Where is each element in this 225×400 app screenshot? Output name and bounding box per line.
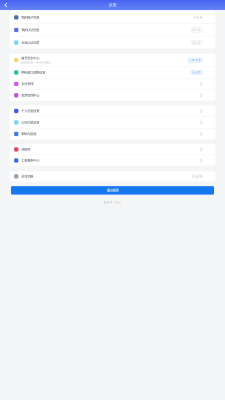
staticText: 未认证 [192,41,201,44]
staticText: 去认证 [192,28,201,32]
button[interactable]: 语言切换 [9,171,215,181]
staticText: 支付管理 [21,82,33,86]
staticText: 清缓存 [21,147,30,151]
button[interactable]: 企业认证信息 [9,36,215,49]
button[interactable]: 工单服务中心 [9,155,215,166]
staticText: 语言切换 [21,174,33,178]
button[interactable]: 网站接口权限设置 [9,67,215,78]
button[interactable]: 清缓存 [9,144,215,155]
staticText: 去设置 [192,71,201,74]
staticText: 立即设置 [189,59,201,62]
staticText: 工单服务中心 [21,158,39,163]
staticText: English [192,174,203,178]
staticText: 版本号 V3.2.1 [104,201,121,204]
staticText: 设置 [108,2,116,7]
button[interactable]: 支付管理 [9,78,215,89]
staticText: 已认证 [194,16,203,19]
staticText: 修改密码、手机号绑定 [21,61,51,64]
staticText: 企业认证信息 [21,40,39,45]
staticText: 帮助与反馈 [21,132,36,136]
button[interactable]: 我的认证信息 [9,24,215,36]
staticText: 我的账户信息 [21,15,39,19]
staticText: 网站接口权限设置 [21,70,45,75]
staticText: 账号安全中心 [21,56,39,60]
staticText: 个人信息设置 [21,109,39,113]
button[interactable]: 账号安全中心 [9,54,215,67]
button[interactable]: Back [0,0,12,10]
button[interactable]: 个人信息设置 [9,105,215,116]
staticText: 退出登录 [106,188,118,193]
button[interactable]: 发票管理中心 [9,90,215,101]
button[interactable]: 公司信息设置 [9,117,215,128]
staticText: 我的认证信息 [21,28,39,32]
button[interactable]: 退出登录 [0,186,225,195]
staticText: 发票管理中心 [21,93,39,97]
button[interactable]: 我的账户信息 [9,11,215,23]
button[interactable]: 帮助与反馈 [9,128,215,139]
staticText: 公司信息设置 [21,120,39,125]
